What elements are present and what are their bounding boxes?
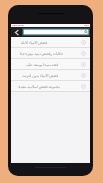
button[interactable]: حكايات وقصص دينية مؤثرة جدا bbox=[11, 48, 90, 59]
button[interactable]: Back bbox=[11, 27, 23, 37]
button[interactable]: قصص الانبياء كاملة bbox=[11, 37, 90, 48]
button[interactable]: قصص الانبياء بدون انترنت bbox=[11, 70, 90, 81]
staticText: قصة سيدنا يوسف عليه bbox=[26, 62, 58, 67]
button[interactable] bbox=[23, 29, 89, 35]
staticText: قصص الانبياء كاملة bbox=[20, 40, 47, 45]
staticText: مجموعة قصص اسلامية مفيدة bbox=[18, 84, 60, 89]
staticText: قصص الانبياء بدون انترنت bbox=[22, 73, 58, 78]
button[interactable]: مجموعة قصص اسلامية مفيدة bbox=[11, 81, 90, 92]
button[interactable]: قصة سيدنا يوسف عليه bbox=[11, 59, 90, 70]
staticText: حكايات وقصص دينية مؤثرة جدا bbox=[19, 51, 63, 56]
